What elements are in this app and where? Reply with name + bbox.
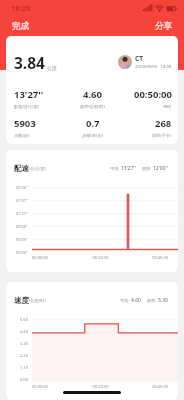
staticText: 公里 (47, 65, 57, 71)
staticText: 5.30 (158, 297, 168, 304)
staticText: 0.7 (86, 117, 100, 130)
staticText: 00'00'' (16, 250, 28, 255)
staticText: 步数(步) (14, 133, 30, 139)
staticText: 4.60 (83, 88, 102, 101)
staticText: 00:50:00 (134, 88, 172, 101)
button[interactable]: 完成 (8, 20, 33, 33)
staticText: 02'26'' (16, 185, 28, 190)
staticText: 5.50 (20, 317, 28, 322)
staticText: 13'27'' (14, 88, 44, 101)
staticText: 速度(公里/时) (80, 104, 106, 110)
staticText: 01'27'' (16, 211, 28, 216)
staticText: 2.20 (20, 353, 28, 358)
staticText: 00:00:00 (32, 255, 78, 260)
staticText: 268 (155, 117, 172, 130)
staticText: CT (135, 54, 143, 63)
staticText: 分享 (155, 21, 172, 32)
staticText: (公里/时) (29, 298, 46, 304)
staticText: 00'29'' (16, 237, 28, 242)
staticText: 13'27'' (121, 165, 136, 172)
staticText: 0.00 (20, 377, 28, 382)
staticText: 01'57'' (16, 198, 28, 203)
staticText: 用时 (163, 104, 172, 109)
staticText: 2019/09/06 18:28 (135, 64, 172, 70)
button[interactable]: 分享 (151, 20, 176, 33)
staticText: 3.84 (14, 52, 45, 73)
staticText: 18:28 (11, 3, 31, 13)
staticText: 4.40 (20, 329, 28, 334)
staticText: 平均 (120, 298, 129, 303)
staticText: 配速 (14, 164, 29, 173)
staticText: 最快 (142, 166, 151, 171)
staticText: 速度 (14, 296, 29, 305)
staticText: 最快 (147, 298, 156, 303)
staticText: (分/公里) (29, 166, 46, 172)
staticText: 3.30 (20, 341, 28, 346)
staticText: 完成 (12, 21, 29, 32)
staticText: 00:22:30 (78, 384, 123, 389)
staticText: 00:00:00 (32, 384, 78, 389)
staticText: 5903 (14, 117, 36, 130)
staticText: 步幅(米/步) (82, 133, 103, 139)
staticText: 消耗(千卡) (152, 133, 172, 139)
staticText: 配速(分/公里) (14, 104, 40, 110)
staticText: 00'58'' (16, 224, 28, 229)
staticText: 00:45:00 (123, 384, 168, 389)
staticText: 平均 (110, 166, 119, 171)
staticText: 4.60 (131, 297, 141, 304)
staticText: 12'00'' (153, 165, 168, 172)
staticText: 1.10 (20, 365, 28, 370)
staticText: 00:45:00 (123, 255, 168, 260)
staticText: 00:22:30 (78, 255, 123, 260)
